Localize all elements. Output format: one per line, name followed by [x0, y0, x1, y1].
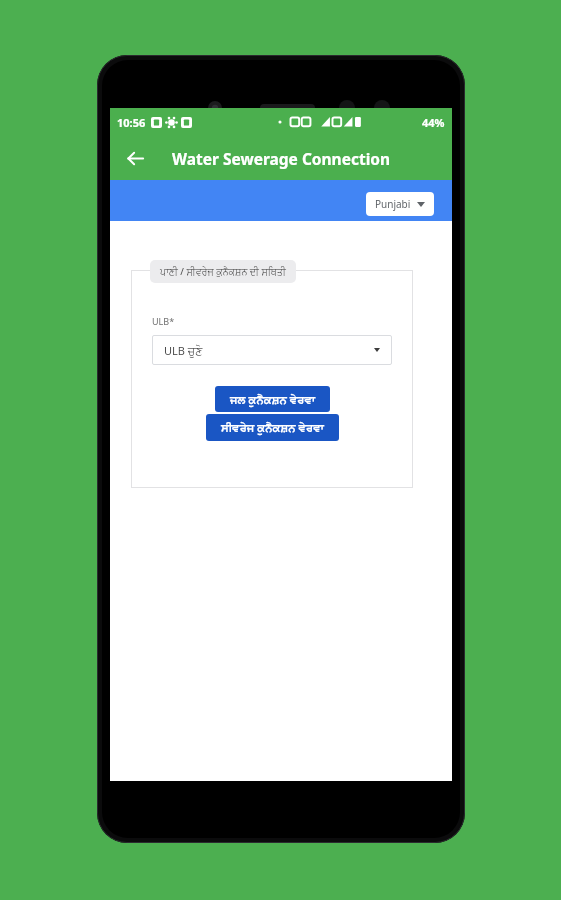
staticText: ULB ਚੁਣੋ	[164, 343, 203, 358]
staticText: ਸੀਵਰੇਜ ਕੁਨੈਕਸ਼ਨ ਵੇਰਵਾ	[221, 420, 324, 435]
staticText: Water Sewerage Connection	[172, 148, 391, 169]
staticText: ULB*	[152, 315, 175, 327]
staticText: 44%	[422, 115, 445, 130]
button[interactable]: Punjabi	[366, 192, 434, 216]
button[interactable]: ਸੀਵਰੇਜ ਕੁਨੈਕਸ਼ਨ ਵੇਰਵਾ	[206, 414, 339, 441]
button[interactable]: ULB ਚੁਣੋ	[152, 335, 392, 365]
staticText: 10:56	[117, 115, 146, 130]
button[interactable]: ਜਲ ਕੁਨੈਕਸ਼ਨ ਵੇਰਵਾ	[215, 386, 330, 412]
button[interactable]: Back	[120, 143, 150, 173]
staticText: ਜਲ ਕੁਨੈਕਸ਼ਨ ਵੇਰਵਾ	[230, 392, 316, 407]
staticText: ਪਾਣੀ / ਸੀਵਰੇਜ ਕੁਨੈਕਸ਼ਨ ਦੀ ਸਥਿਤੀ	[160, 265, 286, 278]
staticText: Punjabi	[375, 197, 411, 211]
